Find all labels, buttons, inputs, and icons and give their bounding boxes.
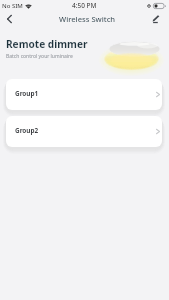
button[interactable]: Back	[2, 11, 17, 26]
button[interactable]: Group2	[6, 116, 162, 147]
staticText: Batch control your luminaire	[6, 53, 73, 60]
staticText: Remote dimmer	[6, 37, 88, 51]
button[interactable]: Edit	[149, 12, 163, 26]
staticText: Wireless Switch	[59, 14, 116, 24]
staticText: Group1	[15, 89, 39, 98]
button[interactable]: Group1	[6, 79, 162, 110]
staticText: 4:50 PM	[72, 1, 97, 10]
staticText: No SIM	[2, 2, 23, 10]
staticText: Group2	[15, 126, 39, 135]
